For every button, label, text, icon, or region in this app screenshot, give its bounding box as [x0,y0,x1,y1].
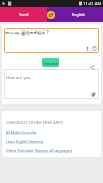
button[interactable]: All Maths Formulas [6,130,37,135]
button[interactable]: Copy text [92,46,97,51]
staticText: 11:41 AM [83,1,102,7]
staticText: எப்படி இருக்கிறாய் ? [5,28,49,35]
button[interactable]: Swap languages [47,11,55,19]
button[interactable]: English [47,7,103,22]
button[interactable]: Share [90,65,95,70]
button[interactable]: Tamil [0,7,47,22]
button[interactable]: Copy translation [91,92,96,97]
button[interactable]: Translate [42,58,59,67]
staticText: Tamil [19,12,29,17]
staticText: English [72,12,85,17]
button[interactable]: Listen [85,46,90,51]
button[interactable]: Online Translator (Support all Languages… [6,148,73,153]
staticText: All Maths Formulas [6,130,37,135]
staticText: CHECKOUT OTHER FREE APPS [6,120,63,126]
button[interactable]: Learn English Grammar [6,139,44,144]
staticText: Translate [43,61,58,66]
staticText: Online Translator (Support all Languages… [6,148,73,153]
staticText: Learn English Grammar [6,139,44,144]
staticText: How are you [6,75,31,81]
